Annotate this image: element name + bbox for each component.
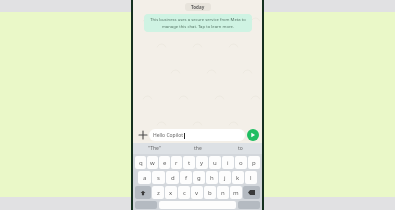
button[interactable]: Hello Copilot (149, 129, 245, 141)
staticText: k (236, 174, 240, 182)
button[interactable]: l (245, 171, 257, 184)
button[interactable]: m (230, 186, 242, 199)
button[interactable]: b (204, 186, 216, 199)
staticText: v (195, 189, 199, 197)
button[interactable]: v (191, 186, 203, 199)
button[interactable]: y (196, 156, 208, 169)
staticText: t (188, 159, 191, 167)
button[interactable]: z (152, 186, 164, 199)
button[interactable]: f (180, 171, 192, 184)
button[interactable]: i (222, 156, 234, 169)
staticText: p (252, 159, 256, 167)
button[interactable]: w (147, 156, 158, 169)
staticText: Today (191, 4, 205, 10)
button[interactable]: d (166, 171, 179, 184)
button[interactable]: the (176, 143, 219, 154)
button[interactable]: Shift (135, 186, 151, 199)
button[interactable]: Enter (238, 201, 260, 209)
button[interactable]: to (219, 143, 262, 154)
button[interactable]: Send (247, 129, 259, 141)
staticText: m (233, 189, 239, 197)
staticText: g (197, 174, 201, 182)
button[interactable]: Symbols (135, 201, 157, 209)
staticText: q (139, 159, 143, 167)
button[interactable]: s (152, 171, 165, 184)
button[interactable]: j (219, 171, 231, 184)
button[interactable]: n (217, 186, 229, 199)
staticText: l (250, 174, 252, 182)
staticText: r (175, 159, 178, 167)
staticText: Hello Copilot (153, 132, 184, 139)
staticText: u (213, 159, 217, 167)
button[interactable]: u (209, 156, 221, 169)
button[interactable]: o (235, 156, 247, 169)
staticText: z (157, 189, 160, 197)
button[interactable]: x (165, 186, 177, 199)
staticText: j (224, 174, 226, 182)
button[interactable]: c (178, 186, 190, 199)
staticText: b (208, 189, 212, 197)
staticText: This business uses a secure service from… (150, 17, 246, 29)
button[interactable]: "The" (133, 143, 176, 154)
staticText: n (221, 189, 225, 197)
staticText: "The" (148, 145, 161, 152)
button[interactable]: q (135, 156, 146, 169)
staticText: c (183, 189, 186, 197)
staticText: f (185, 174, 188, 182)
staticText: i (227, 159, 229, 167)
button[interactable]: e (159, 156, 170, 169)
button[interactable]: This business uses a secure service from… (144, 14, 252, 32)
staticText: x (169, 189, 173, 197)
button[interactable]: t (183, 156, 195, 169)
staticText: y (200, 159, 204, 167)
button[interactable]: r (171, 156, 182, 169)
staticText: d (171, 174, 175, 182)
staticText: h (210, 174, 214, 182)
staticText: the (194, 145, 202, 152)
button[interactable]: g (193, 171, 205, 184)
button[interactable]: p (248, 156, 260, 169)
staticText: e (163, 159, 167, 167)
staticText: s (157, 174, 160, 182)
staticText: o (239, 159, 243, 167)
button[interactable]: a (138, 171, 151, 184)
button[interactable]: Attach (136, 128, 149, 141)
staticText: a (143, 174, 147, 182)
button[interactable]: Backspace (243, 186, 260, 199)
button[interactable]: h (206, 171, 218, 184)
staticText: w (150, 159, 155, 167)
button[interactable]: k (232, 171, 244, 184)
staticText: to (238, 145, 243, 152)
